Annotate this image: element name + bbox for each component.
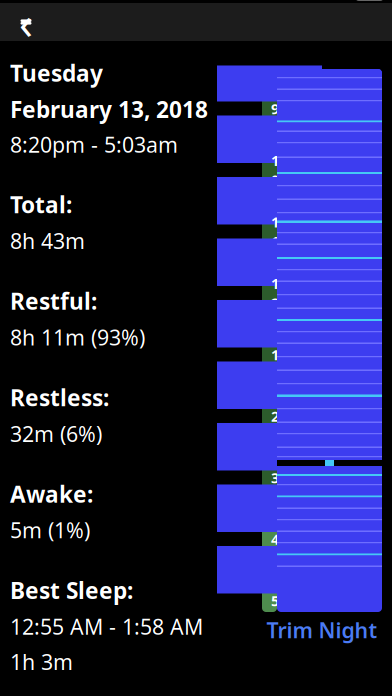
button[interactable]: Back (6, 3, 46, 41)
staticText: Restless: (10, 382, 109, 412)
staticText: Trim Night (266, 616, 377, 644)
staticText: 8:20pm - 5:03am (10, 130, 178, 158)
staticText: Best Sleep: (10, 575, 133, 605)
staticText: February 13, 2018 (10, 94, 208, 124)
staticText: 100% (307, 0, 351, 3)
staticText: 32m (6%) (10, 419, 102, 448)
staticText: 5m (1%) (10, 516, 90, 544)
staticText: 1 (271, 345, 279, 364)
staticText: ‹ (19, 0, 33, 52)
staticText: 9:41 AM (145, 0, 213, 3)
button[interactable]: Trim Night (262, 618, 382, 642)
staticText: 1h 3m (10, 648, 73, 676)
staticText: 12:55 AM - 1:58 AM (10, 612, 203, 641)
staticText: 8h 43m (10, 227, 85, 255)
staticText: Total: (10, 189, 72, 220)
staticText: Tuesday (10, 58, 103, 88)
staticText: 3 (271, 468, 279, 487)
staticText: 8h 11m (93%) (10, 323, 145, 351)
staticText: 4 (271, 529, 279, 549)
staticText: 5 (271, 591, 279, 610)
staticText: Restful: (10, 286, 97, 316)
staticText: 2 (271, 406, 279, 426)
staticText: 10 (271, 150, 279, 189)
staticText: 11 (271, 212, 279, 251)
staticText: Awake: (10, 479, 93, 509)
staticText: 12 (271, 273, 279, 312)
staticText: 9 (271, 99, 279, 118)
